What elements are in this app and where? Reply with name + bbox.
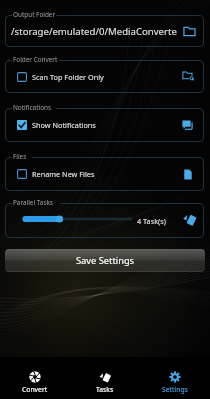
button[interactable]: Rename New Files [5, 157, 204, 191]
button[interactable]: Convert [0, 357, 70, 399]
staticText: Save Settings [76, 254, 135, 267]
staticText: Files [13, 152, 27, 161]
staticText: Parallel Tasks [13, 198, 53, 207]
button[interactable]: Parallel tasks slider [18, 212, 140, 226]
button[interactable]: Tasks [70, 357, 140, 399]
staticText: Notifications [13, 103, 52, 112]
staticText: Rename New Files [32, 169, 95, 179]
button[interactable]: Settings [140, 357, 210, 399]
staticText: /storage/emulated/0/MediaConverte [11, 25, 177, 38]
staticText: Scan Top Folder Only [32, 72, 104, 82]
button[interactable]: Save Settings [5, 249, 205, 272]
staticText: Settings [162, 385, 188, 394]
button[interactable]: Show Notifications [5, 108, 204, 142]
button[interactable]: Scan Top Folder Only [5, 60, 204, 93]
staticText: Show Notifications [32, 120, 96, 130]
staticText: Tasks [96, 385, 114, 394]
staticText: 4 Task(s) [137, 216, 166, 226]
staticText: Convert [22, 385, 48, 394]
button[interactable]: Parallel tasks slider [5, 203, 204, 238]
staticText: Folder Convert [13, 55, 58, 64]
button[interactable]: /storage/emulated/0/MediaConverte [5, 15, 204, 47]
staticText: Output Folder [13, 10, 56, 19]
